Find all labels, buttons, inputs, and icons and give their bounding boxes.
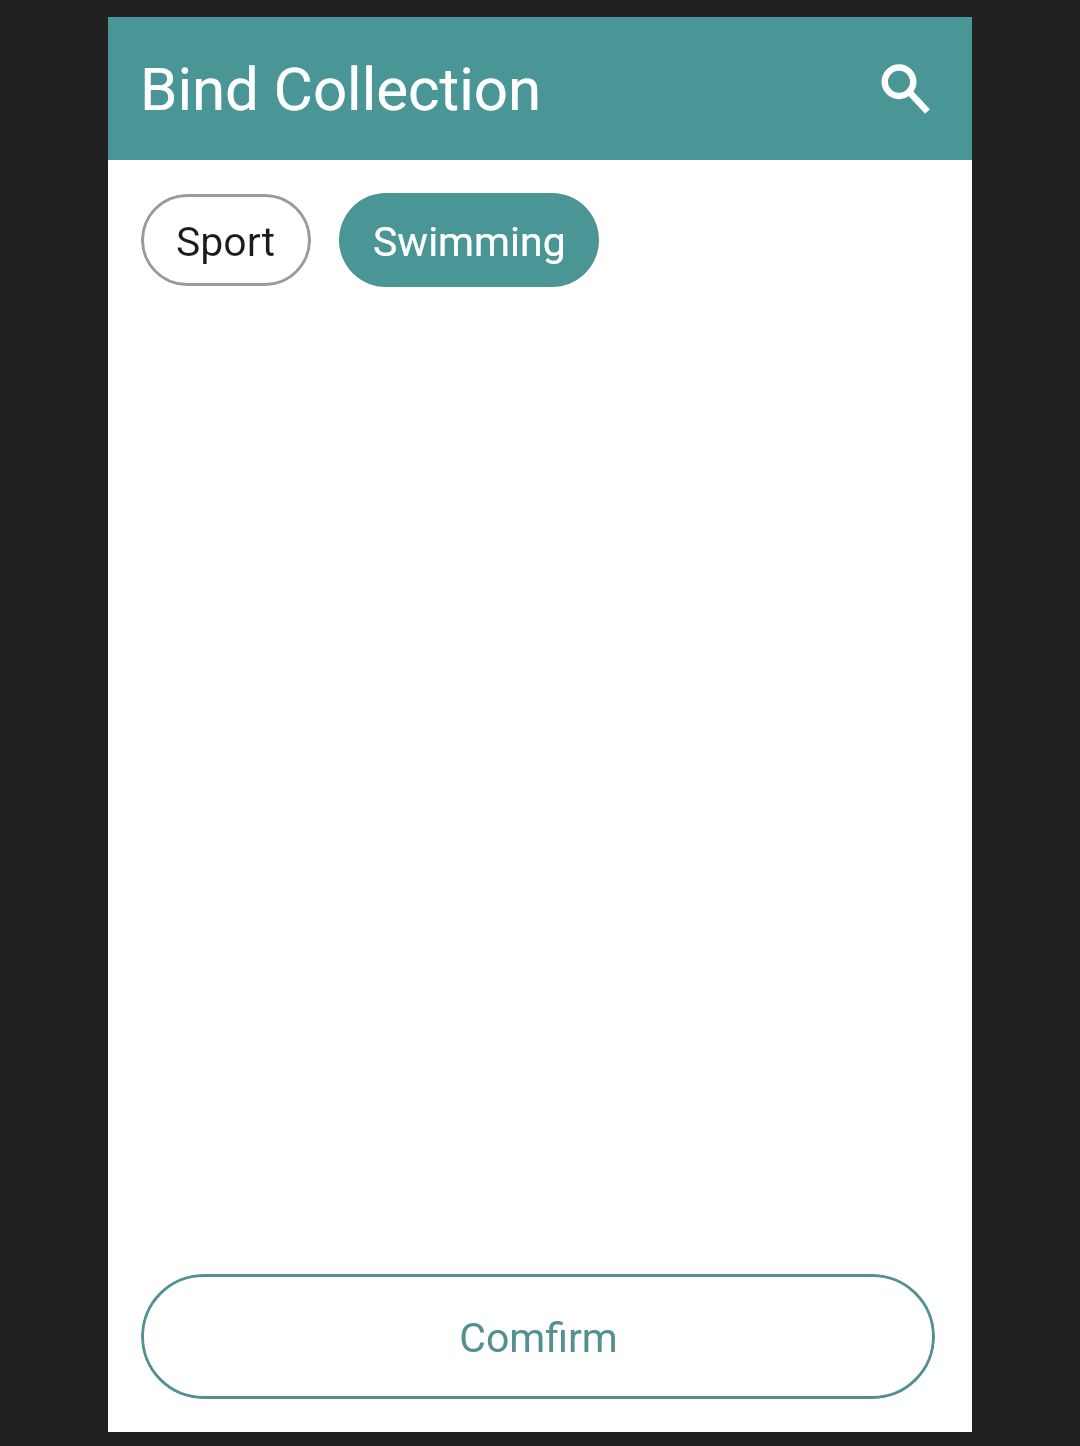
button[interactable]: Comfirm [141, 1274, 935, 1399]
button[interactable]: Sport [141, 194, 311, 286]
staticText: Bind Collection [140, 54, 542, 124]
staticText: Comfirm [459, 1314, 618, 1362]
staticText: Sport [176, 218, 276, 266]
button[interactable]: Search [865, 49, 945, 129]
button[interactable]: Swimming [339, 193, 599, 287]
staticText: Swimming [373, 218, 566, 266]
